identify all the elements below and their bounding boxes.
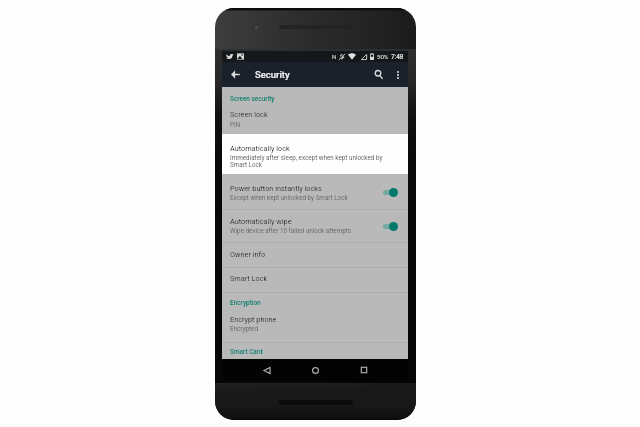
staticText: 50%: [377, 53, 389, 60]
staticText: Automatically lock: [230, 144, 290, 153]
staticText: Except when kept unlocked by Smart Lock: [230, 194, 348, 201]
staticText: Screen security: [230, 95, 275, 103]
staticText: Screen lock: [230, 110, 268, 119]
button[interactable]: Power button instantly locks: [222, 175, 408, 210]
button[interactable]: Smart Card: [222, 343, 408, 359]
button[interactable]: Encryption: [222, 293, 408, 311]
button[interactable]: Owner info: [222, 243, 408, 268]
staticText: Power button instantly locks: [230, 184, 322, 193]
button[interactable]: Automatically wipe: [222, 210, 408, 243]
staticText: 7:48: [391, 53, 404, 61]
staticText: Wipe device after 10 failed unlock attem…: [230, 227, 352, 234]
staticText: N: [332, 53, 337, 60]
staticText: Encryption: [230, 299, 261, 307]
button[interactable]: More options: [389, 62, 407, 87]
button[interactable]: Encrypt phone: [222, 311, 408, 343]
button[interactable]: Toggle: [383, 187, 399, 198]
button[interactable]: Screen security: [222, 87, 408, 106]
button[interactable]: Smart Lock: [222, 267, 408, 292]
staticText: Smart Lock: [230, 274, 268, 283]
staticText: Smart Card: [230, 348, 263, 356]
button[interactable]: Automatically lock: [222, 135, 408, 175]
staticText: Encrypt phone: [230, 315, 277, 324]
staticText: Automatically wipe: [230, 217, 292, 226]
button[interactable]: Screen lock, PIN: [222, 106, 408, 135]
staticText: Encrypted: [230, 325, 259, 332]
button[interactable]: Back: [251, 359, 283, 381]
button[interactable]: Search: [368, 62, 390, 87]
staticText: Owner info: [230, 250, 266, 259]
button[interactable]: Home: [299, 359, 331, 381]
staticText: Immediately after sleep, except when kep…: [230, 154, 383, 168]
staticText: Security: [255, 69, 290, 80]
staticText: PIN: [230, 121, 241, 128]
button[interactable]: Toggle: [383, 221, 399, 232]
button[interactable]: Navigate up: [223, 62, 247, 87]
button[interactable]: Recent apps: [348, 359, 380, 381]
